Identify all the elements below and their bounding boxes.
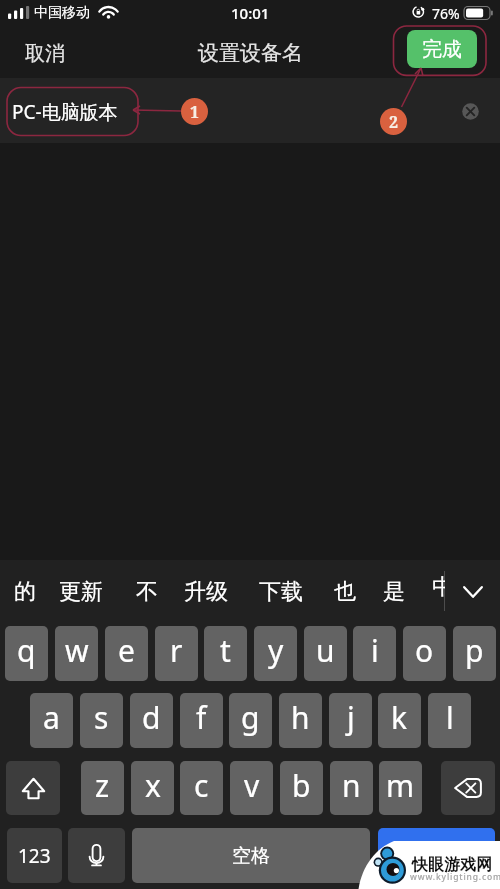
staticText: r bbox=[170, 630, 183, 671]
button[interactable]: h bbox=[279, 693, 322, 748]
staticText: t bbox=[220, 630, 231, 671]
button[interactable]: 下载 bbox=[253, 573, 309, 611]
staticText: 更新 bbox=[59, 578, 103, 606]
staticText: 76% bbox=[432, 4, 460, 23]
staticText: 是 bbox=[383, 578, 405, 606]
staticText: p bbox=[465, 630, 484, 671]
button[interactable]: z bbox=[81, 761, 124, 815]
button[interactable]: Backspace bbox=[441, 761, 495, 815]
button[interactable]: Collapse keyboard bbox=[456, 574, 490, 610]
button[interactable]: 完成 bbox=[407, 30, 477, 68]
staticText: z bbox=[95, 765, 110, 806]
staticText: 取消 bbox=[25, 41, 65, 66]
button[interactable]: m bbox=[379, 761, 422, 815]
button[interactable]: y bbox=[254, 626, 297, 681]
button[interactable]: Voice input bbox=[68, 828, 125, 883]
staticText: f bbox=[196, 697, 207, 738]
button[interactable]: w bbox=[55, 626, 98, 681]
staticText: 也 bbox=[334, 578, 356, 606]
button[interactable]: p bbox=[453, 626, 496, 681]
staticText: u bbox=[316, 630, 335, 671]
button[interactable]: e bbox=[105, 626, 148, 681]
staticText: b bbox=[292, 765, 311, 806]
button[interactable]: a bbox=[30, 693, 73, 748]
button[interactable]: t bbox=[204, 626, 247, 681]
staticText: m bbox=[386, 765, 415, 806]
staticText: q bbox=[17, 630, 36, 671]
staticText: PC-电脑版本 bbox=[12, 99, 118, 125]
button[interactable]: g bbox=[229, 693, 272, 748]
button[interactable]: u bbox=[304, 626, 347, 681]
button[interactable]: l bbox=[428, 693, 471, 748]
button[interactable]: c bbox=[180, 761, 223, 815]
button[interactable]: q bbox=[5, 626, 48, 681]
staticText: w bbox=[65, 630, 89, 671]
staticText: 10:01 bbox=[231, 3, 270, 23]
staticText: 的 bbox=[14, 578, 36, 606]
button[interactable]: n bbox=[330, 761, 373, 815]
staticText: i bbox=[371, 630, 379, 671]
button[interactable]: Shift bbox=[6, 761, 60, 815]
button[interactable]: k bbox=[378, 693, 421, 748]
staticText: j bbox=[347, 697, 355, 738]
staticText: x bbox=[145, 765, 161, 806]
staticText: o bbox=[415, 630, 434, 671]
staticText: 换行 bbox=[418, 844, 456, 868]
staticText: 不 bbox=[136, 578, 158, 606]
button[interactable]: 换行 bbox=[378, 828, 495, 883]
staticText: 空格 bbox=[232, 844, 270, 868]
staticText: 2 bbox=[389, 111, 399, 133]
staticText: www.kyligting.com bbox=[410, 871, 500, 883]
button[interactable]: v bbox=[230, 761, 273, 815]
staticText: 123 bbox=[18, 843, 51, 869]
staticText: 快眼游戏网 bbox=[412, 855, 492, 875]
staticText: s bbox=[94, 697, 109, 738]
button[interactable]: b bbox=[280, 761, 323, 815]
button[interactable]: 不 bbox=[130, 573, 164, 611]
button[interactable]: x bbox=[131, 761, 174, 815]
staticText: v bbox=[244, 765, 260, 806]
staticText: d bbox=[142, 697, 161, 738]
button[interactable]: j bbox=[329, 693, 372, 748]
staticText: e bbox=[118, 630, 135, 671]
staticText: 1 bbox=[190, 101, 200, 123]
staticText: 下载 bbox=[259, 578, 303, 606]
button[interactable]: d bbox=[130, 693, 173, 748]
staticText: l bbox=[446, 697, 454, 738]
button[interactable]: 的 bbox=[8, 573, 42, 611]
staticText: c bbox=[194, 765, 209, 806]
staticText: 中国移动 bbox=[34, 4, 90, 22]
button[interactable]: 空格 bbox=[132, 828, 370, 883]
staticText: 设置设备名 bbox=[198, 40, 303, 66]
staticText: k bbox=[391, 697, 408, 738]
button[interactable]: 中 bbox=[426, 573, 446, 611]
button[interactable]: 123 bbox=[7, 828, 62, 883]
staticText: 中 bbox=[432, 573, 445, 601]
button[interactable]: 也 bbox=[328, 573, 362, 611]
button[interactable]: f bbox=[180, 693, 223, 748]
button[interactable]: s bbox=[80, 693, 123, 748]
staticText: n bbox=[342, 765, 361, 806]
button[interactable]: r bbox=[155, 626, 198, 681]
button[interactable]: o bbox=[403, 626, 446, 681]
staticText: a bbox=[43, 697, 60, 738]
button[interactable]: i bbox=[353, 626, 396, 681]
button[interactable]: 升级 bbox=[178, 573, 234, 611]
button[interactable]: 是 bbox=[377, 573, 411, 611]
staticText: h bbox=[291, 697, 310, 738]
button[interactable]: 取消 bbox=[16, 34, 74, 73]
staticText: 升级 bbox=[184, 578, 228, 606]
button[interactable]: Clear text bbox=[458, 99, 483, 124]
staticText: g bbox=[241, 697, 260, 738]
staticText: 完成 bbox=[422, 37, 462, 62]
staticText: y bbox=[268, 630, 284, 671]
button[interactable]: 更新 bbox=[53, 573, 109, 611]
